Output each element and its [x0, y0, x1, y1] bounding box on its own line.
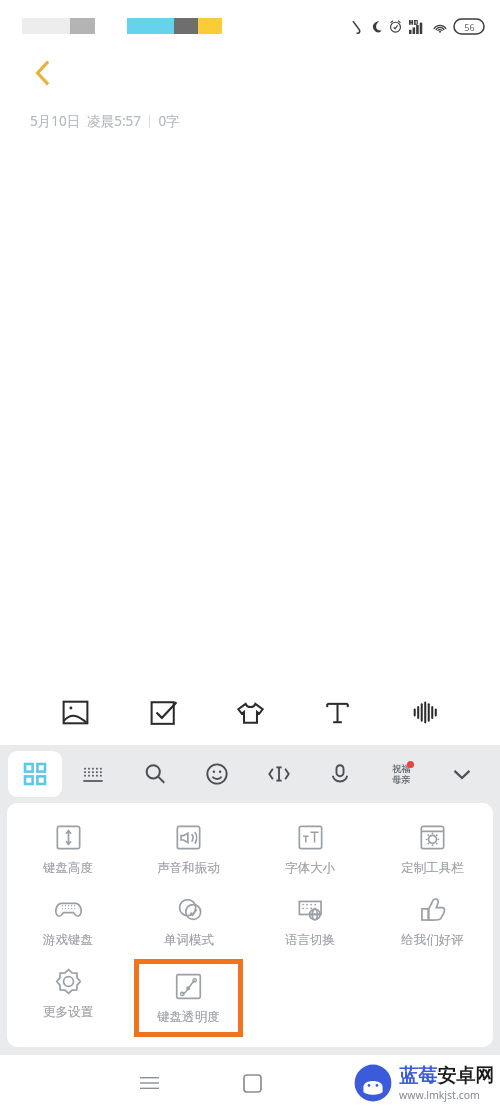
- button[interactable]: 声音和振动: [128, 815, 249, 883]
- button[interactable]: 更多设置: [7, 959, 128, 1027]
- staticText: 给我们好评: [401, 932, 464, 948]
- staticText: 安卓网: [437, 1064, 494, 1088]
- button[interactable]: 键盘高度: [7, 815, 128, 883]
- button[interactable]: Mother's day: [370, 751, 431, 797]
- staticText: 单词模式: [164, 932, 214, 948]
- button[interactable]: Back: [22, 52, 64, 94]
- staticText: 蓝莓: [399, 1064, 437, 1088]
- staticText: 5月10日 凌晨5:57: [30, 112, 141, 130]
- button[interactable]: Emoji: [186, 751, 248, 797]
- button[interactable]: Voice input: [309, 751, 370, 797]
- button[interactable]: Sticker: [224, 686, 276, 738]
- staticText: 语言切换: [285, 932, 335, 948]
- button[interactable]: Insert image: [49, 686, 101, 738]
- staticText: 字体大小: [285, 860, 335, 876]
- staticText: 更多设置: [43, 1004, 93, 1020]
- staticText: 键盘高度: [43, 860, 93, 876]
- button[interactable]: 字体大小: [249, 815, 371, 883]
- staticText: 声音和振动: [157, 860, 220, 876]
- button[interactable]: 给我们好评: [371, 887, 493, 955]
- button[interactable]: Home: [228, 1059, 276, 1107]
- staticText: 母亲: [392, 774, 410, 785]
- button[interactable]: 游戏键盘: [7, 887, 128, 955]
- button[interactable]: 定制工具栏: [371, 815, 493, 883]
- button[interactable]: 键盘透明度: [139, 964, 238, 1032]
- staticText: 键盘透明度: [157, 1009, 220, 1025]
- button[interactable]: Keyboard: [62, 751, 124, 797]
- button[interactable]: Cursor: [248, 751, 309, 797]
- staticText: 0字: [158, 112, 180, 130]
- staticText: www.lmkjst.com: [399, 1088, 480, 1102]
- button[interactable]: Search: [124, 751, 186, 797]
- staticText: 游戏键盘: [43, 932, 93, 948]
- button[interactable]: Collapse keyboard: [431, 751, 492, 797]
- staticText: 定制工具栏: [401, 860, 464, 876]
- button[interactable]: Panel: [8, 751, 62, 797]
- button[interactable]: Checklist: [137, 686, 189, 738]
- button[interactable]: 单词模式: [128, 887, 249, 955]
- staticText: 祝福: [392, 763, 410, 774]
- button[interactable]: Text format: [311, 686, 363, 738]
- staticText: 56: [464, 21, 475, 33]
- button[interactable]: Recents: [125, 1059, 173, 1107]
- button[interactable]: Voice: [399, 686, 451, 738]
- button[interactable]: 语言切换: [249, 887, 371, 955]
